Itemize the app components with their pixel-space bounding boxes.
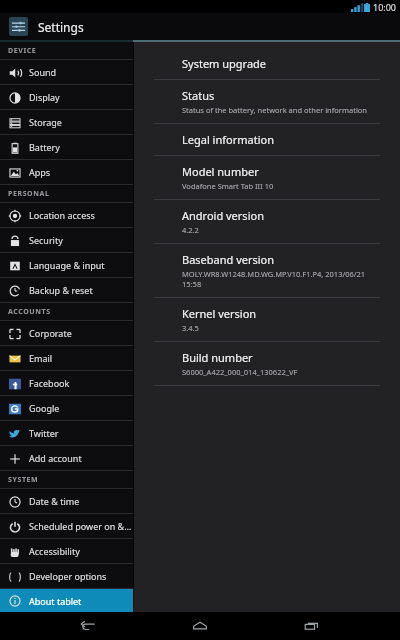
staticText: DEVICE — [8, 46, 37, 56]
button[interactable]: Twitter — [0, 421, 133, 445]
staticText: Email — [29, 352, 53, 364]
staticText: ACCOUNTS — [8, 307, 51, 317]
staticText: Kernel version — [182, 306, 257, 321]
staticText: Apps — [29, 166, 51, 178]
staticText: 3.4.5 — [182, 323, 199, 333]
staticText: About tablet — [29, 595, 82, 607]
staticText: Backup & reset — [29, 284, 93, 296]
staticText: 10:00 — [373, 1, 397, 13]
staticText: Android version — [182, 208, 264, 223]
button[interactable]: Storage — [0, 110, 133, 134]
staticText: Twitter — [29, 427, 59, 439]
button[interactable]: Home — [183, 612, 217, 640]
staticText: Facebook — [29, 377, 70, 389]
button[interactable]: Corporate — [0, 321, 133, 345]
button[interactable]: Display — [0, 85, 133, 109]
staticText: S6000_A422_000_014_130622_VF — [182, 367, 298, 377]
button[interactable]: Settings — [0, 13, 400, 40]
staticText: Google — [29, 402, 60, 414]
button[interactable]: Sound — [0, 60, 133, 84]
button[interactable]: Developer options — [0, 564, 133, 588]
button[interactable]: Baseband version — [134, 244, 400, 298]
staticText: Build number — [182, 350, 253, 365]
staticText: 4.2.2 — [182, 225, 199, 235]
staticText: Settings — [38, 19, 84, 35]
button[interactable]: Apps — [0, 160, 133, 184]
button[interactable]: Scheduled power on & off — [0, 514, 133, 538]
staticText: Scheduled power on & off — [29, 520, 133, 532]
staticText: Add account — [29, 452, 82, 464]
button[interactable]: Facebook — [0, 371, 133, 395]
button[interactable]: Legal information — [134, 124, 400, 156]
button[interactable]: Accessibility — [0, 539, 133, 563]
button[interactable]: Model number — [134, 156, 400, 200]
staticText: Date & time — [29, 495, 80, 507]
button[interactable]: Add account — [0, 446, 133, 470]
staticText: SYSTEM — [8, 475, 39, 485]
staticText: Model number — [182, 164, 259, 179]
staticText: Display — [29, 91, 60, 103]
staticText: Sound — [29, 66, 57, 78]
button[interactable]: Battery — [0, 135, 133, 159]
staticText: Legal information — [182, 132, 274, 147]
button[interactable]: Build number — [134, 342, 400, 386]
button[interactable]: Location access — [0, 203, 133, 227]
button[interactable]: Backup & reset — [0, 278, 133, 302]
button[interactable]: Language & input — [0, 253, 133, 277]
button[interactable]: About tablet — [0, 589, 133, 612]
staticText: Baseband version — [182, 252, 275, 267]
button[interactable]: Android version — [134, 200, 400, 244]
staticText: Corporate — [29, 327, 72, 339]
staticText: Security — [29, 234, 63, 246]
staticText: Status — [182, 88, 215, 103]
staticText: Vodafone Smart Tab III 10 — [182, 181, 274, 191]
button[interactable]: Email — [0, 346, 133, 370]
button[interactable]: Google — [0, 396, 133, 420]
button[interactable]: Kernel version — [134, 298, 400, 342]
staticText: PERSONAL — [8, 189, 50, 199]
button[interactable]: Back — [71, 612, 105, 640]
staticText: Developer options — [29, 570, 107, 582]
staticText: Accessibility — [29, 545, 80, 557]
button[interactable]: System upgrade — [134, 48, 400, 80]
staticText: System upgrade — [182, 56, 267, 71]
staticText: Language & input — [29, 259, 105, 271]
button[interactable]: Status — [134, 80, 400, 124]
staticText: Status of the battery, network and other… — [182, 105, 367, 115]
staticText: Battery — [29, 141, 60, 153]
button[interactable]: Recent apps — [295, 612, 329, 640]
staticText: MOLY.WR8.W1248.MD.WG.MP.V10.F1.P4, 2013/… — [182, 269, 366, 289]
button[interactable]: Security — [0, 228, 133, 252]
staticText: Storage — [29, 116, 62, 128]
staticText: Location access — [29, 209, 95, 221]
button[interactable]: Date & time — [0, 489, 133, 513]
